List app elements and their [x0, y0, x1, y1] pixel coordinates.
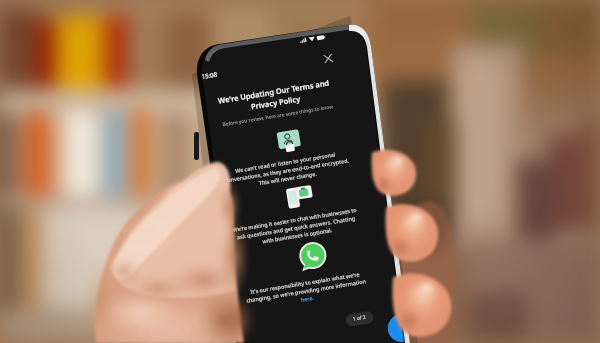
- button[interactable]: [0, 0, 600, 343]
- other: Phone showing WhatsApp terms update held…: [0, 0, 600, 343]
